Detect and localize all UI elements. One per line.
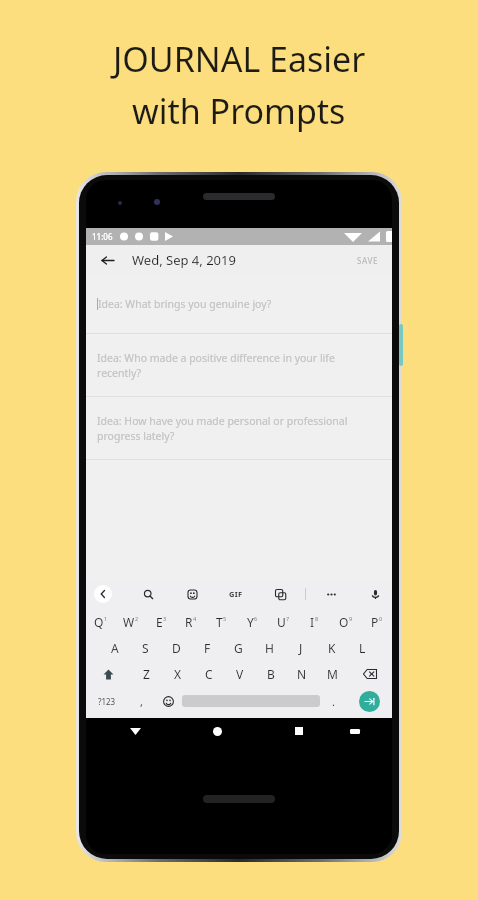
button[interactable]: Back bbox=[124, 720, 146, 742]
staticText: R bbox=[185, 614, 193, 630]
staticText: L bbox=[359, 640, 366, 656]
staticText: 5 bbox=[223, 615, 227, 622]
button[interactable]: Switch keyboard bbox=[344, 720, 366, 742]
button[interactable]: Z bbox=[131, 661, 162, 687]
staticText: Idea: What brings you genuine joy? bbox=[98, 297, 272, 311]
button[interactable]: U bbox=[268, 609, 299, 635]
button[interactable]: Backspace bbox=[348, 661, 392, 687]
button[interactable]: W bbox=[116, 609, 146, 635]
button[interactable]: Back bbox=[94, 585, 112, 603]
staticText: Idea: How have you made personal or prof… bbox=[97, 414, 381, 443]
staticText: E bbox=[156, 614, 163, 630]
staticText: 7 bbox=[286, 615, 290, 622]
button[interactable]: C bbox=[193, 661, 224, 687]
button[interactable]: O bbox=[330, 609, 361, 635]
staticText: T bbox=[216, 614, 223, 630]
button[interactable]: ?123 bbox=[86, 687, 128, 715]
staticText: K bbox=[328, 640, 336, 656]
button[interactable]: Q bbox=[86, 609, 116, 635]
staticText: G bbox=[234, 640, 243, 656]
button[interactable]: S bbox=[130, 635, 161, 661]
staticText: Q bbox=[94, 614, 104, 630]
button[interactable]: . bbox=[320, 687, 347, 715]
staticText: , bbox=[140, 694, 143, 709]
staticText: Idea: Who made a positive difference in … bbox=[97, 351, 381, 380]
staticText: GIF bbox=[229, 589, 243, 599]
staticText: P bbox=[371, 614, 379, 630]
staticText: ?123 bbox=[98, 696, 116, 707]
button[interactable]: Translate bbox=[271, 585, 289, 603]
button[interactable]: G bbox=[223, 635, 254, 661]
button[interactable]: R bbox=[176, 609, 206, 635]
staticText: O bbox=[339, 614, 349, 630]
staticText: Z bbox=[143, 666, 150, 682]
button[interactable]: D bbox=[161, 635, 192, 661]
button[interactable]: L bbox=[347, 635, 378, 661]
staticText: JOURNAL Easier bbox=[113, 36, 366, 82]
staticText: 9 bbox=[349, 615, 353, 622]
button[interactable]: Recent apps bbox=[288, 720, 310, 742]
button[interactable]: SAVE bbox=[354, 252, 382, 269]
button[interactable]: GIF bbox=[227, 587, 245, 601]
button[interactable]: X bbox=[162, 661, 193, 687]
button[interactable]: Enter bbox=[359, 691, 380, 712]
button[interactable]: J bbox=[285, 635, 316, 661]
staticText: 11:06 bbox=[92, 231, 113, 242]
button[interactable]: K bbox=[316, 635, 347, 661]
button[interactable]: Emoji bbox=[155, 687, 182, 715]
staticText: 0 bbox=[379, 615, 383, 622]
staticText: I bbox=[310, 614, 315, 630]
staticText: 2 bbox=[135, 615, 139, 622]
button[interactable]: Search bbox=[139, 585, 157, 603]
button[interactable]: M bbox=[317, 661, 348, 687]
button[interactable]: P bbox=[361, 609, 392, 635]
staticText: B bbox=[267, 666, 275, 682]
staticText: X bbox=[174, 666, 182, 682]
button[interactable]: Shift bbox=[86, 661, 131, 687]
staticText: 3 bbox=[163, 615, 167, 622]
staticText: M bbox=[327, 666, 338, 682]
button[interactable]: B bbox=[255, 661, 286, 687]
button[interactable]: V bbox=[224, 661, 255, 687]
button[interactable]: N bbox=[286, 661, 317, 687]
staticText: S bbox=[142, 640, 149, 656]
staticText: F bbox=[204, 640, 211, 656]
button[interactable]: Y bbox=[237, 609, 268, 635]
button[interactable]: E bbox=[146, 609, 176, 635]
staticText: D bbox=[172, 640, 181, 656]
staticText: Wed, Sep 4, 2019 bbox=[132, 251, 236, 269]
button[interactable]: F bbox=[192, 635, 223, 661]
button[interactable]: A bbox=[100, 635, 130, 661]
button[interactable]: Voice input bbox=[366, 585, 384, 603]
staticText: 8 bbox=[315, 615, 319, 622]
button[interactable]: Back bbox=[96, 249, 118, 271]
button[interactable]: Home bbox=[206, 720, 228, 742]
staticText: SAVE bbox=[357, 255, 379, 266]
button[interactable]: Idea: Who made a positive difference in … bbox=[86, 334, 392, 396]
staticText: . bbox=[332, 694, 335, 709]
staticText: N bbox=[297, 666, 307, 682]
button[interactable]: , bbox=[128, 687, 155, 715]
staticText: H bbox=[265, 640, 274, 656]
staticText: Y bbox=[247, 614, 254, 630]
button[interactable]: T bbox=[206, 609, 237, 635]
button[interactable]: H bbox=[254, 635, 285, 661]
button[interactable]: I bbox=[299, 609, 330, 635]
staticText: J bbox=[299, 640, 303, 656]
staticText: 6 bbox=[254, 615, 258, 622]
button[interactable]: Idea: What brings you genuine joy? bbox=[86, 275, 392, 333]
staticText: with Prompts bbox=[132, 88, 346, 134]
button[interactable]: Idea: How have you made personal or prof… bbox=[86, 397, 392, 459]
staticText: W bbox=[123, 614, 135, 630]
staticText: C bbox=[205, 666, 213, 682]
staticText: U bbox=[277, 614, 286, 630]
button[interactable]: Stickers bbox=[183, 585, 201, 603]
staticText: 1 bbox=[104, 615, 108, 622]
staticText: A bbox=[111, 640, 119, 656]
button[interactable]: More options bbox=[322, 585, 340, 603]
staticText: 4 bbox=[193, 615, 197, 622]
staticText: V bbox=[236, 666, 244, 682]
